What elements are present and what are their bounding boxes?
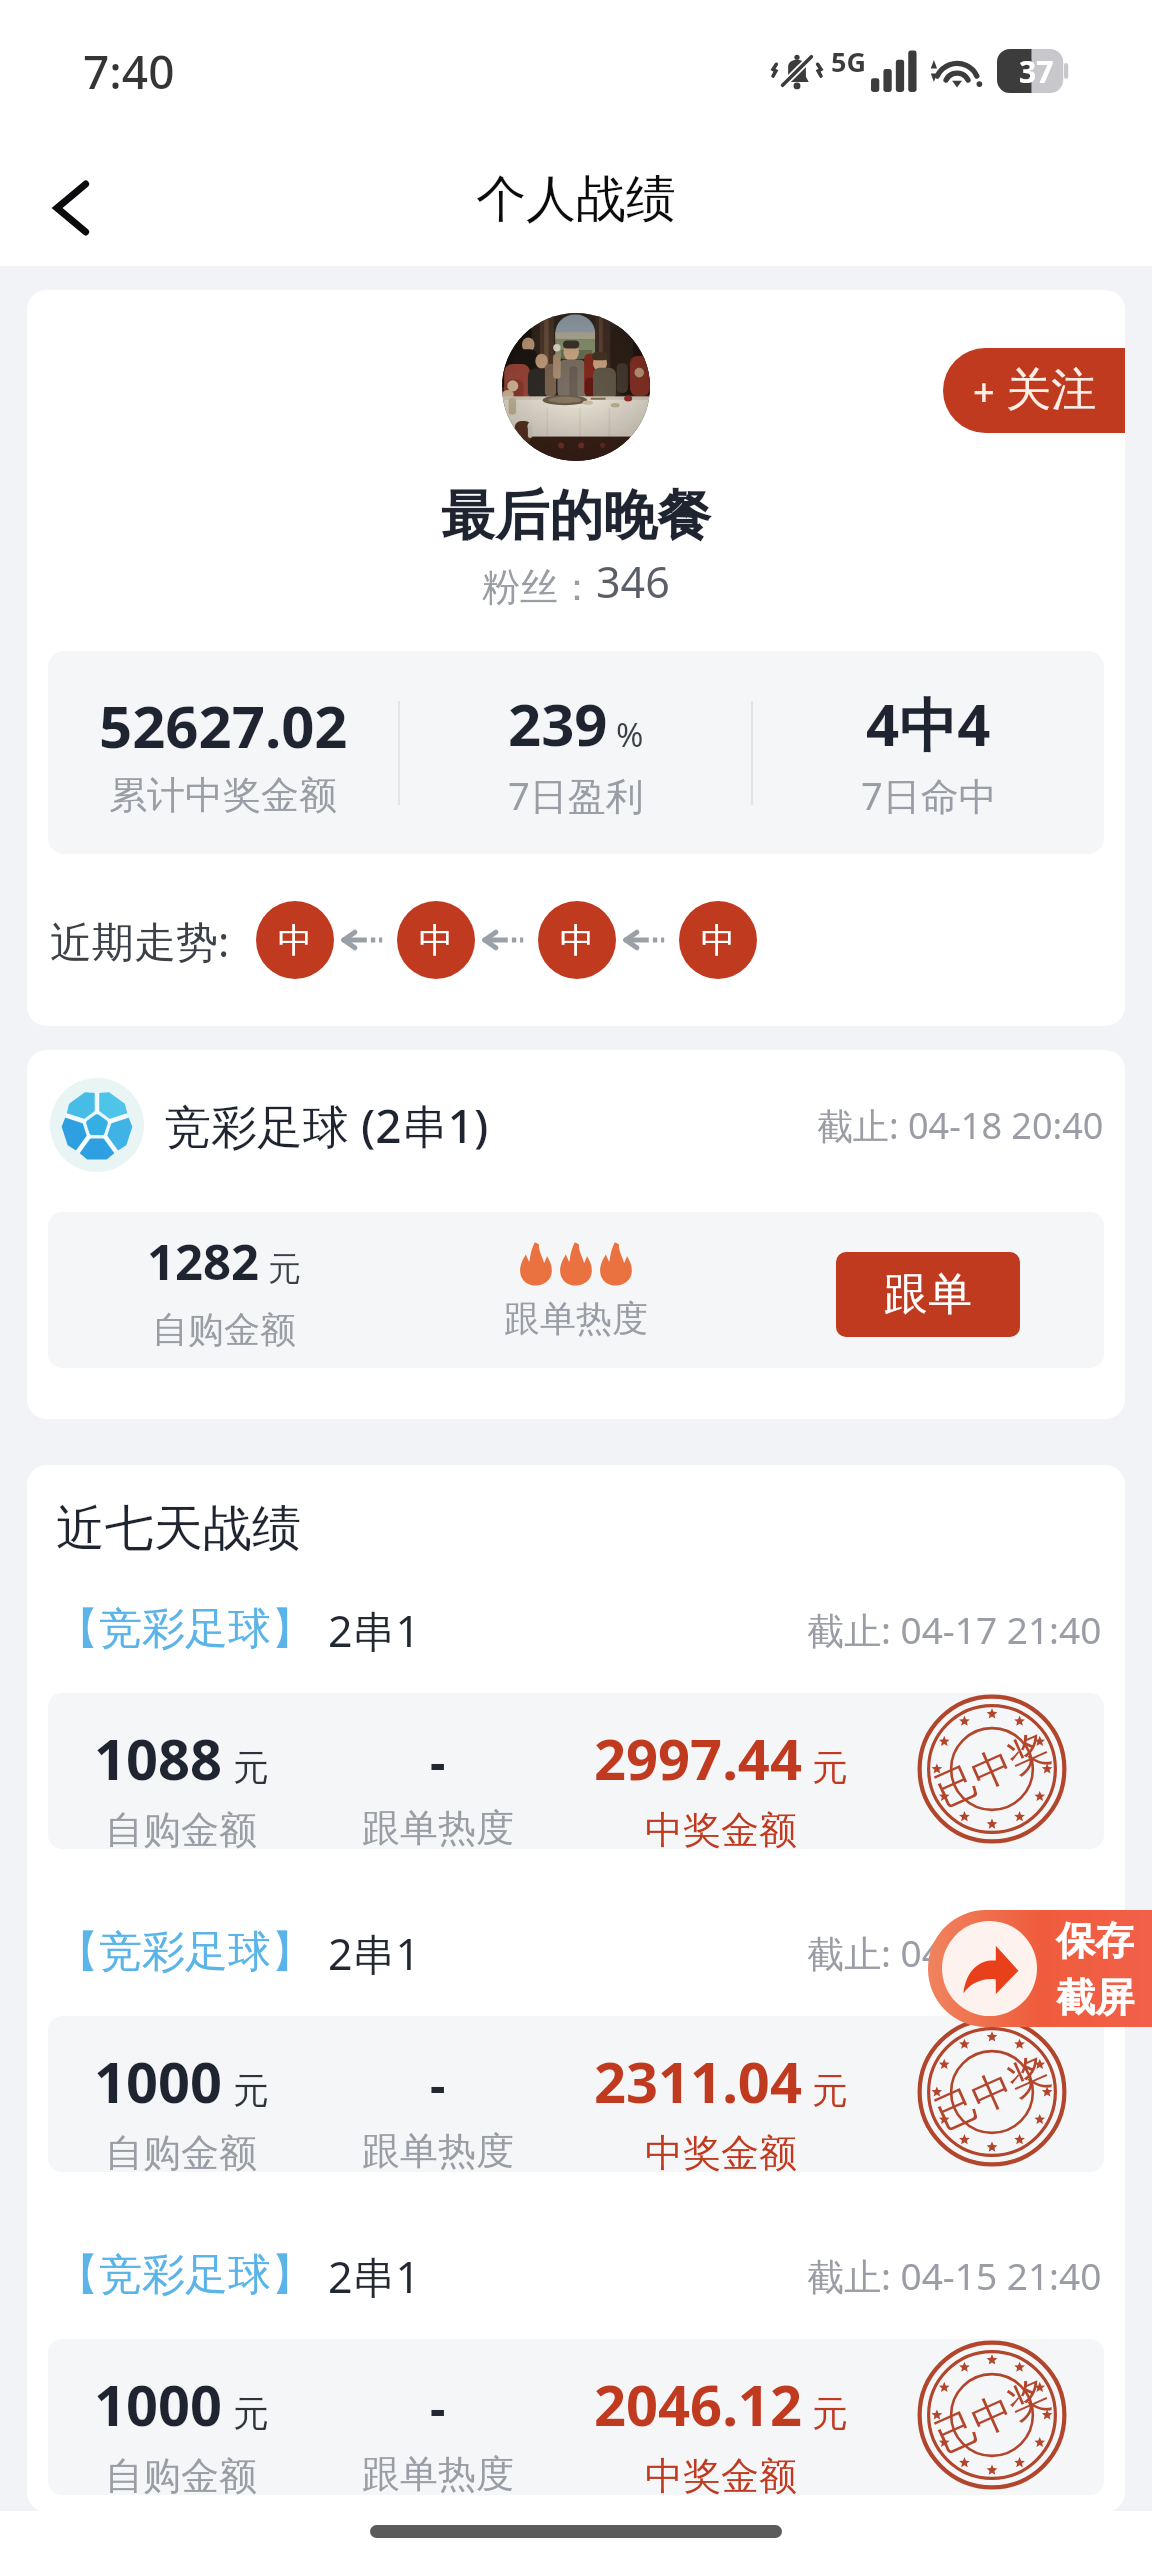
staticText: 239 bbox=[508, 684, 608, 763]
staticText: 2997.44 bbox=[594, 1720, 802, 1796]
staticText: 5G bbox=[831, 43, 866, 80]
staticText: 2046.12 bbox=[594, 2366, 802, 2442]
staticText: 跟单热度 bbox=[362, 2127, 514, 2172]
staticText: 元 bbox=[233, 2391, 269, 2436]
staticText: 近期走势: bbox=[50, 912, 230, 969]
staticText: 中 bbox=[560, 919, 594, 962]
staticText: 元 bbox=[812, 2391, 848, 2436]
staticText: 截止: 04-18 20:40 bbox=[817, 1101, 1104, 1150]
staticText: 自购金额 bbox=[105, 1806, 257, 1849]
staticText: 跟单热度 bbox=[504, 1296, 648, 1341]
staticText: 粉丝： bbox=[482, 563, 596, 611]
staticText: 已中奖 bbox=[927, 1722, 1057, 1816]
staticText: 元 bbox=[233, 1745, 269, 1790]
staticText: 截止: 04-17 21:40 bbox=[807, 1604, 1102, 1655]
staticText: 2311.04 bbox=[594, 2043, 802, 2119]
staticText: 2串1 bbox=[328, 1924, 421, 1980]
staticText: 跟单热度 bbox=[362, 2450, 514, 2495]
staticText: 自购金额 bbox=[105, 2452, 257, 2495]
staticText: 最后的晚餐 bbox=[27, 482, 1125, 550]
button[interactable]: Save screenshot bbox=[928, 1910, 1152, 2027]
staticText: 竞彩足球 (2串1) bbox=[165, 1094, 489, 1157]
staticText: 7:40 bbox=[83, 40, 175, 103]
staticText: 37 bbox=[1019, 51, 1054, 92]
staticText: 1000 bbox=[94, 2366, 223, 2442]
staticText: - bbox=[430, 2052, 446, 2117]
staticText: 2串1 bbox=[328, 1601, 421, 1657]
staticText: 截止: 04-15 21:40 bbox=[807, 2250, 1102, 2301]
staticText: 元 bbox=[812, 1745, 848, 1790]
staticText: 自购金额 bbox=[105, 2129, 257, 2172]
staticText: 中奖金额 bbox=[645, 1806, 797, 1849]
staticText: 1282 bbox=[147, 1228, 260, 1295]
button[interactable]: 跟单 bbox=[836, 1252, 1020, 1337]
staticText: 元 bbox=[812, 2068, 848, 2113]
staticText: 52627.02 bbox=[99, 686, 348, 765]
staticText: 已中奖 bbox=[927, 2045, 1057, 2139]
staticText: 保存 bbox=[1056, 1916, 1134, 1965]
staticText: 中 bbox=[419, 919, 453, 962]
staticText: 自购金额 bbox=[152, 1307, 296, 1352]
staticText: 截止: 04-16 21:40 bbox=[807, 1927, 1102, 1978]
staticText: 1000 bbox=[94, 2043, 223, 2119]
staticText: 中 bbox=[701, 919, 735, 962]
button[interactable]: Back bbox=[24, 163, 114, 253]
staticText: + bbox=[973, 365, 995, 417]
staticText: 中奖金额 bbox=[645, 2129, 797, 2172]
staticText: 中 bbox=[278, 919, 312, 962]
staticText: 累计中奖金额 bbox=[109, 771, 337, 819]
staticText: 跟单热度 bbox=[362, 1804, 514, 1849]
staticText: 近七天战绩 bbox=[56, 1498, 301, 1560]
staticText: 【竞彩足球】 bbox=[56, 1602, 314, 1656]
staticText: 7日盈利 bbox=[508, 769, 644, 821]
staticText: 中奖金额 bbox=[645, 2452, 797, 2495]
staticText: 2串1 bbox=[328, 2247, 421, 2303]
staticText: 元 bbox=[268, 1248, 301, 1290]
button[interactable]: + bbox=[943, 348, 1125, 433]
staticText: - bbox=[430, 1729, 446, 1794]
staticText: 个人战绩 bbox=[476, 168, 676, 231]
staticText: 已中奖 bbox=[927, 2368, 1057, 2462]
staticText: % bbox=[616, 712, 644, 757]
staticText: 截屏 bbox=[1056, 1973, 1134, 2022]
staticText: 关注 bbox=[1006, 362, 1096, 419]
staticText: 【竞彩足球】 bbox=[56, 1925, 314, 1979]
staticText: - bbox=[430, 2375, 446, 2440]
staticText: 7日命中 bbox=[861, 769, 997, 821]
staticText: 4中4 bbox=[866, 684, 991, 763]
staticText: 【竞彩足球】 bbox=[56, 2248, 314, 2302]
staticText: 1088 bbox=[94, 1720, 223, 1796]
staticText: 跟单 bbox=[884, 1267, 972, 1322]
staticText: 元 bbox=[233, 2068, 269, 2113]
staticText: 346 bbox=[596, 552, 670, 611]
